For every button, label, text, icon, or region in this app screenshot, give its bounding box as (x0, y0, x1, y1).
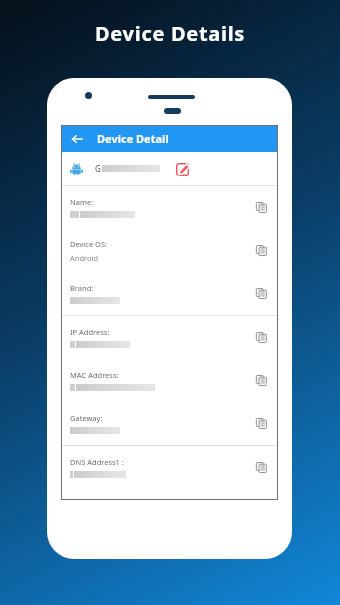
staticText: Device Details (95, 20, 246, 47)
button[interactable]: Copy Device OS: (244, 229, 278, 272)
staticText: DNS Address1 : (70, 457, 124, 467)
button[interactable]: Gateway: (61, 402, 278, 445)
button[interactable]: Copy Brand: (244, 272, 278, 315)
staticText: Device OS: (70, 239, 108, 249)
staticText: Gateway: (70, 413, 103, 423)
staticText: Android (70, 253, 99, 263)
button[interactable]: Copy MAC Address: (244, 359, 278, 402)
staticText: Name: (70, 197, 94, 207)
button[interactable]: Device OS: (61, 229, 278, 272)
button[interactable]: Edit device name (173, 160, 191, 178)
button[interactable]: Copy Name: (244, 186, 278, 229)
button[interactable]: DNS Address1 : (61, 446, 278, 489)
button[interactable]: Copy IP Address: (244, 316, 278, 359)
button[interactable]: Back (67, 129, 87, 149)
button[interactable]: Name: (61, 186, 278, 229)
button[interactable]: IP Address: (61, 316, 278, 359)
staticText: IP Address: (70, 327, 110, 337)
button[interactable]: MAC Address: (61, 359, 278, 402)
button[interactable]: Copy Gateway: (244, 402, 278, 445)
button[interactable]: Brand: (61, 272, 278, 315)
staticText: MAC Address: (70, 370, 119, 380)
button[interactable]: Copy DNS Address1 : (244, 446, 278, 489)
staticText: Brand: (70, 283, 94, 293)
staticText: Device Detail (97, 131, 169, 146)
staticText: G (95, 163, 101, 174)
